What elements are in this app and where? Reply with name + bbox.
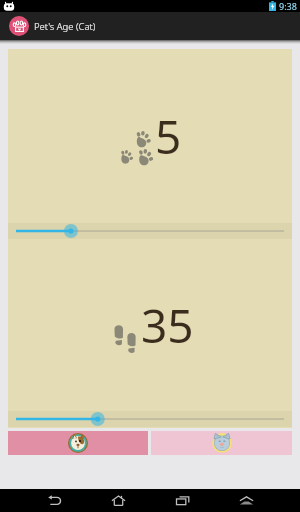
- button[interactable]: Dog mode: [8, 431, 148, 455]
- staticText: 9:38: [279, 0, 297, 12]
- button[interactable]: App icon: [9, 16, 29, 36]
- button[interactable]: Cat mode: [151, 431, 292, 455]
- button[interactable]: Hide navigation bar: [214, 489, 278, 512]
- button[interactable]: Recent apps: [150, 489, 214, 512]
- button[interactable]: Back: [22, 489, 86, 512]
- button[interactable]: Age slider: [8, 411, 292, 427]
- staticText: 5: [155, 105, 182, 168]
- staticText: Pet's Age (Cat): [34, 20, 96, 33]
- button[interactable]: Home: [86, 489, 150, 512]
- staticText: 35: [141, 294, 194, 357]
- button[interactable]: Age slider: [8, 223, 292, 239]
